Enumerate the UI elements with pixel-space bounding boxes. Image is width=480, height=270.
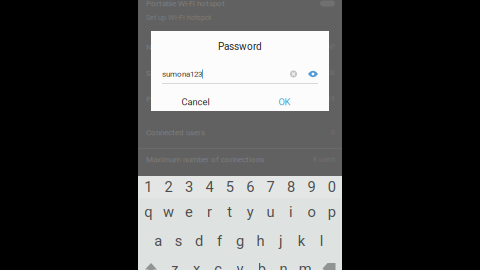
button[interactable]: Shift [138,260,164,270]
button[interactable]: 6 [240,176,260,198]
staticText: Security [146,68,175,78]
button[interactable]: b [251,260,273,270]
button[interactable]: p [322,198,342,226]
button[interactable]: u [260,198,281,226]
button[interactable]: Show password [308,69,318,78]
button[interactable]: y [240,198,260,226]
staticText: o [307,203,315,221]
button[interactable]: x [186,260,207,270]
button[interactable]: Password [138,86,342,112]
staticText: Set up Wi-Fi hotspot [146,13,211,22]
staticText: 8 users [313,156,335,163]
button[interactable]: l [312,226,332,256]
staticText: p [328,203,336,221]
button[interactable]: f [209,226,230,256]
button[interactable]: 7 [260,176,281,198]
staticText: 0 [331,129,335,136]
button[interactable]: 4 [199,176,220,198]
button[interactable]: i [281,198,301,226]
staticText: Portable Wi-Fi hotspot [146,0,225,8]
staticText: WPA2 PSK [303,69,335,77]
staticText: t [227,203,232,221]
staticText: 3 [185,178,193,196]
staticText: v [236,260,243,270]
staticText: x [193,260,200,270]
button[interactable]: Clear text [289,69,298,78]
staticText: f [217,232,222,250]
button[interactable]: v [229,260,251,270]
button[interactable]: m [294,260,316,270]
staticText: i [289,203,293,221]
button[interactable]: 9 [301,176,322,198]
button[interactable]: g [230,226,250,256]
button[interactable]: Network name [138,34,342,60]
staticText: k [298,232,305,250]
staticText: d [195,232,203,250]
staticText: sumona123 [298,95,335,103]
button[interactable]: OK [240,93,329,111]
button[interactable]: 8 [281,176,301,198]
button[interactable]: n [273,260,294,270]
button[interactable]: h [250,226,271,256]
staticText: 9 [307,178,315,196]
staticText: 2 [165,178,173,196]
staticText: Network name [146,42,198,52]
button[interactable]: c [207,260,229,270]
button[interactable]: Security [138,60,342,86]
staticText: w [163,203,174,221]
staticText: b [258,260,266,270]
staticText: c [214,260,222,270]
button[interactable]: Cancel [151,93,240,111]
staticText: 6 [246,178,254,196]
button[interactable]: 5 [220,176,240,198]
staticText: e [185,203,193,221]
staticText: 4 [205,178,213,196]
staticText: n [279,260,287,270]
staticText: 5 [226,178,234,196]
staticText: q [144,203,152,221]
staticText: 7 [267,178,275,196]
button[interactable]: d [189,226,209,256]
staticText: g [236,232,244,250]
staticText: r [207,203,212,221]
staticText: u [267,203,275,221]
staticText: z [171,260,178,270]
staticText: Connected users [146,128,205,137]
button[interactable]: 2 [158,176,179,198]
staticText: j [279,232,283,250]
staticText: OK [278,96,290,107]
button[interactable]: w [158,198,179,226]
staticText: AndroidAP [303,43,335,51]
button[interactable]: 3 [179,176,199,198]
button[interactable]: Maximum number of connections [138,151,342,168]
button[interactable]: t [220,198,240,226]
staticText: Password [218,41,262,52]
staticText: s [175,232,183,250]
button[interactable]: Connected users [138,124,342,141]
staticText: Password [146,94,182,104]
button[interactable]: s [168,226,189,256]
staticText: Maximum number of connections [146,155,264,164]
button[interactable]: q [138,198,158,226]
button[interactable]: Backspace [316,260,342,270]
button[interactable]: 0 [322,176,342,198]
staticText: 1 [144,178,152,196]
button[interactable]: e [179,198,199,226]
staticText: l [320,232,324,250]
staticText: 8 [287,178,295,196]
staticText: y [247,203,254,221]
button[interactable]: z [164,260,186,270]
button[interactable]: 1 [138,176,158,198]
button[interactable]: r [199,198,220,226]
staticText: Cancel [181,96,209,107]
staticText: h [256,232,264,250]
staticText: a [154,232,162,250]
button[interactable]: k [291,226,311,256]
button[interactable]: o [301,198,322,226]
staticText: m [299,260,312,270]
button[interactable]: j [271,226,291,256]
staticText: 0 [328,178,336,196]
staticText: sumona123 [162,69,202,79]
button[interactable]: a [148,226,168,256]
